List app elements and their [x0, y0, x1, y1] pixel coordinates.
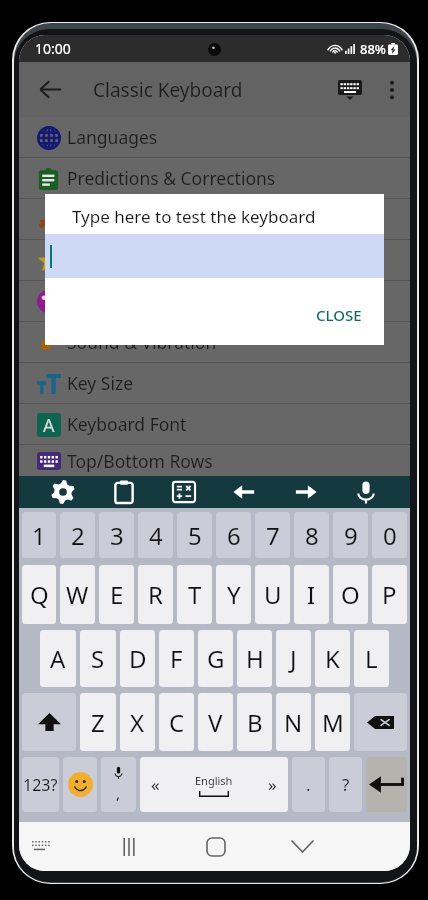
button[interactable]: Emoji [63, 757, 97, 812]
button[interactable]: Back [259, 822, 346, 871]
button[interactable]: Voice input [350, 476, 382, 508]
button[interactable]: K [315, 630, 350, 687]
button[interactable]: 1 [22, 512, 56, 558]
staticText: 6 [227, 519, 241, 552]
staticText: J [290, 642, 297, 675]
button[interactable]: R [138, 565, 173, 624]
staticText: A [50, 642, 66, 675]
button[interactable]: Themes [19, 240, 410, 280]
button[interactable]: L [354, 630, 389, 687]
staticText: » [268, 773, 277, 796]
button[interactable]: Clipboard [108, 476, 140, 508]
staticText: Keyboard Font [67, 412, 187, 436]
staticText: A [43, 413, 55, 437]
button[interactable]: Voice input and comma [101, 757, 136, 812]
staticText: R [148, 578, 163, 611]
button[interactable]: CLOSE [294, 299, 384, 345]
button[interactable]: . [292, 757, 325, 812]
staticText: M [322, 706, 344, 739]
button[interactable]: S [80, 630, 116, 687]
button[interactable]: Space, English [140, 757, 288, 812]
button[interactable]: Q [22, 565, 56, 624]
staticText: T [188, 578, 202, 611]
staticText: H [246, 642, 264, 675]
button[interactable]: E [99, 565, 134, 624]
staticText: 123? [23, 774, 58, 796]
button[interactable]: Shift [22, 693, 76, 751]
button[interactable]: 123? [22, 757, 59, 812]
button[interactable]: X [120, 693, 155, 751]
staticText: Z [91, 706, 105, 739]
button[interactable]: 8 [294, 512, 329, 558]
button[interactable]: Move cursor right [289, 476, 321, 508]
button[interactable]: 2 [60, 512, 95, 558]
button[interactable]: Y [216, 565, 251, 624]
staticText: English [195, 773, 233, 788]
staticText: 4 [149, 519, 163, 552]
staticText: Top/Bottom Rows [67, 449, 213, 473]
staticText: X [130, 706, 145, 739]
button[interactable]: Show keyboard [23, 822, 59, 871]
staticText: V [208, 706, 223, 739]
button[interactable]: Key Size [19, 363, 410, 403]
button[interactable]: H [237, 630, 272, 687]
button[interactable]: V [198, 693, 233, 751]
button[interactable]: Back [19, 62, 81, 117]
button[interactable]: 9 [333, 512, 368, 558]
staticText: 7 [266, 519, 280, 552]
button[interactable]: Move cursor left [229, 476, 261, 508]
staticText: . [306, 773, 311, 796]
button[interactable]: T [177, 565, 212, 624]
button[interactable]: Languages [19, 117, 410, 157]
button[interactable]: Settings [47, 476, 79, 508]
staticText: 2 [71, 519, 85, 552]
button[interactable]: N [276, 693, 311, 751]
button[interactable]: More options [374, 62, 410, 117]
button[interactable]: 3 [99, 512, 134, 558]
button[interactable]: J [276, 630, 311, 687]
button[interactable]: F [159, 630, 194, 687]
button[interactable]: U [255, 565, 290, 624]
staticText: I [307, 578, 316, 611]
staticText: C [169, 706, 185, 739]
button[interactable]: 6 [216, 512, 251, 558]
button[interactable]: O [333, 565, 368, 624]
button[interactable]: Z [80, 693, 116, 751]
staticText: Gestures [67, 207, 141, 231]
button[interactable]: Predictions & Corrections [19, 158, 410, 198]
staticText: W [66, 578, 89, 611]
staticText: Q [30, 578, 49, 611]
staticText: 88% [360, 40, 386, 58]
button[interactable]: M [315, 693, 350, 751]
button[interactable]: Top/Bottom Rows [19, 445, 410, 476]
button[interactable]: Recent apps [86, 822, 172, 871]
button[interactable]: Enter [366, 757, 407, 812]
staticText: D [129, 642, 147, 675]
button[interactable]: C [159, 693, 194, 751]
button[interactable]: Sound & Vibration [19, 322, 410, 362]
button[interactable]: Symbols [168, 476, 200, 508]
staticText: Type here to test the keyboard [72, 205, 316, 228]
button[interactable]: Keyboard preview [326, 62, 374, 117]
staticText: 3 [110, 519, 124, 552]
button[interactable]: 0 [372, 512, 407, 558]
button[interactable]: 5 [177, 512, 212, 558]
button[interactable]: Appearance [19, 281, 410, 321]
button[interactable]: G [198, 630, 233, 687]
button[interactable]: 4 [138, 512, 173, 558]
button[interactable]: Home [172, 822, 259, 871]
button[interactable]: D [120, 630, 155, 687]
button[interactable]: Backspace [354, 693, 407, 751]
staticText: L [365, 642, 378, 675]
button[interactable]: A [40, 630, 76, 687]
button[interactable]: Gestures [19, 199, 410, 239]
button[interactable]: A [19, 404, 410, 444]
button[interactable]: 7 [255, 512, 290, 558]
staticText: G [207, 642, 225, 675]
staticText: 10:00 [35, 39, 71, 58]
button[interactable]: B [237, 693, 272, 751]
button[interactable]: ? [329, 757, 362, 812]
button[interactable]: P [372, 565, 407, 624]
button[interactable]: W [60, 565, 95, 624]
button[interactable]: I [294, 565, 329, 624]
